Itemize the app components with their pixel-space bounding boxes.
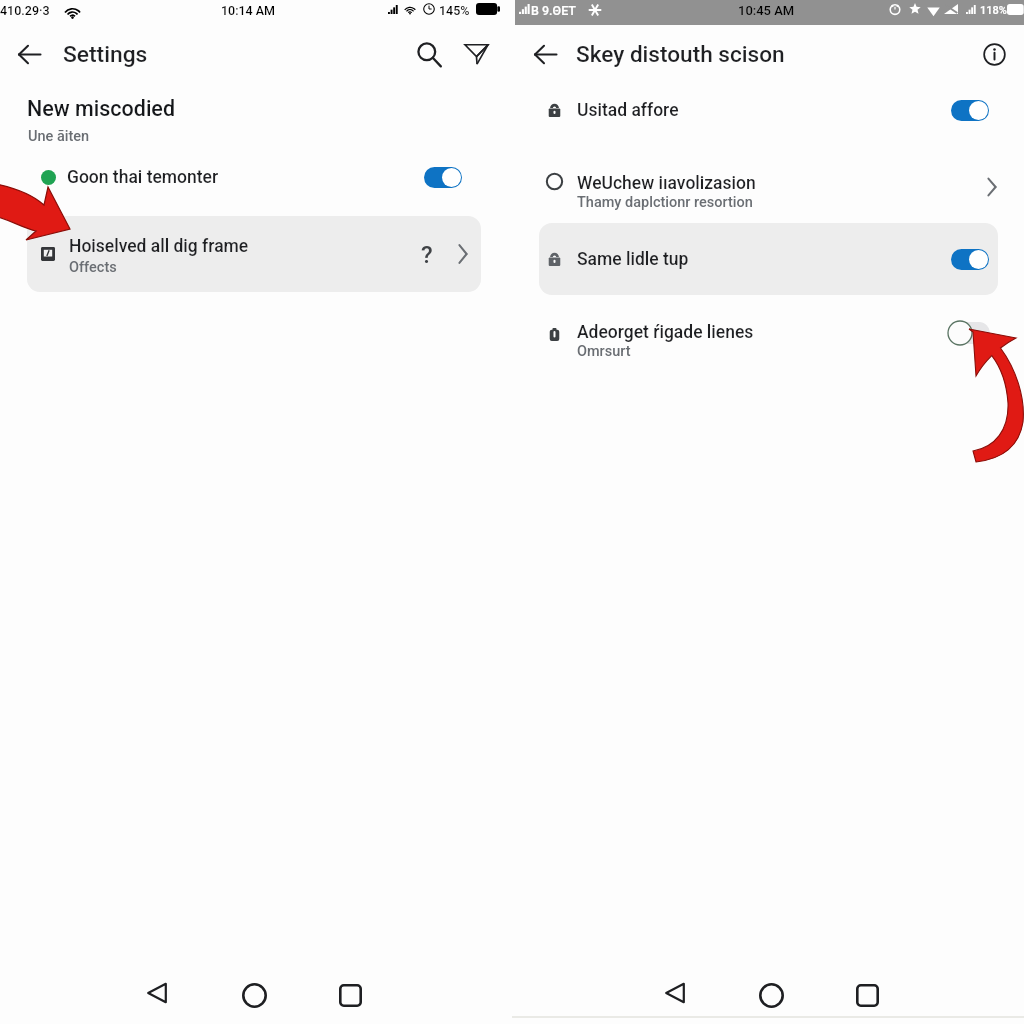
staticText: 10:45 AM xyxy=(738,3,795,18)
button[interactable]: Send xyxy=(454,32,498,76)
button[interactable]: Toggle on xyxy=(424,167,462,188)
staticText: 145% xyxy=(439,3,470,18)
button[interactable]: Toggle on xyxy=(951,100,989,121)
button[interactable]: Back xyxy=(133,971,181,1019)
button[interactable]: Info xyxy=(972,32,1016,76)
staticText: 10:14 AM xyxy=(221,3,276,18)
button[interactable]: Home xyxy=(230,971,278,1019)
button[interactable]: Same lidle tup xyxy=(539,223,998,295)
button[interactable]: Goon thai temonter xyxy=(0,156,512,198)
button[interactable]: Back xyxy=(525,34,565,74)
staticText: Thamy daplctionr resortion xyxy=(577,194,753,211)
staticText: 410.29·3 xyxy=(0,3,50,18)
staticText: Offects xyxy=(69,259,117,276)
staticText: Hoiselved all dig frame xyxy=(69,236,249,257)
staticText: 118% xyxy=(980,4,1007,17)
staticText: Skey distouth scison xyxy=(576,41,785,67)
staticText: ? xyxy=(421,241,433,269)
staticText: Omrsurt xyxy=(577,343,631,360)
button[interactable]: Hoiselved all dig frame xyxy=(27,216,481,292)
staticText: Settings xyxy=(63,41,148,68)
button[interactable]: Search xyxy=(407,32,451,76)
button[interactable]: Back xyxy=(651,971,699,1019)
button[interactable]: WeUchew iıavolizasion xyxy=(512,164,1024,220)
button[interactable]: Home xyxy=(747,971,795,1019)
button[interactable]: Recents xyxy=(326,971,374,1019)
staticText: B 9.ΘET xyxy=(531,3,576,18)
staticText: Same lidle tup xyxy=(577,249,689,270)
button[interactable]: Recents xyxy=(843,971,891,1019)
button[interactable]: Toggle on xyxy=(951,249,989,270)
button[interactable]: Back xyxy=(9,34,49,74)
staticText: WeUchew iıavolizasion xyxy=(577,173,756,194)
button[interactable]: Adeorget ŕigade lienes xyxy=(512,313,1024,369)
button[interactable]: Usitad affore xyxy=(512,87,1024,133)
staticText: Adeorget ŕigade lienes xyxy=(577,322,754,343)
staticText: New miscodied xyxy=(27,96,175,121)
button[interactable]: Toggle off xyxy=(947,320,993,346)
staticText: Usitad affore xyxy=(577,100,679,121)
staticText: Goon thai temonter xyxy=(67,167,219,188)
staticText: Une āiten xyxy=(28,128,90,145)
